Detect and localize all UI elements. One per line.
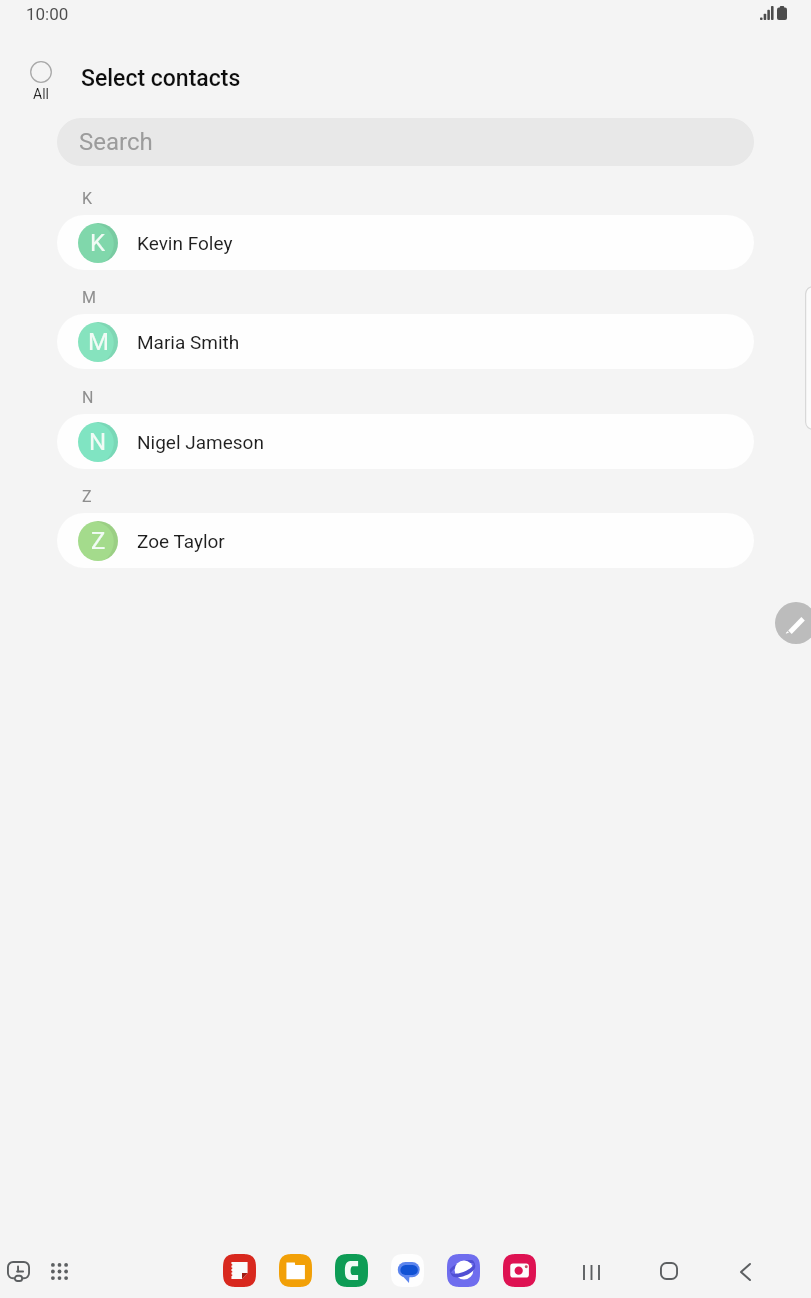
staticText: Zoe Taylor <box>137 530 225 552</box>
staticText: Nigel Jameson <box>137 431 264 453</box>
staticText: Z <box>82 487 92 506</box>
staticText: 10:00 <box>26 4 69 24</box>
button[interactable]: Apps <box>41 1253 77 1289</box>
button[interactable]: N <box>57 414 754 469</box>
button[interactable]: Home <box>651 1253 687 1289</box>
button[interactable]: My Files <box>279 1254 312 1287</box>
button[interactable]: Internet <box>447 1254 480 1287</box>
staticText: Kevin Foley <box>137 232 233 254</box>
staticText: Maria Smith <box>137 331 240 353</box>
button[interactable]: Phone <box>335 1254 368 1287</box>
staticText: N <box>89 428 107 456</box>
button[interactable]: Samsung Notes <box>223 1254 256 1287</box>
staticText: Search <box>79 128 153 156</box>
staticText: K <box>82 189 93 208</box>
staticText: N <box>82 388 94 407</box>
button[interactable]: Search <box>57 118 754 166</box>
button[interactable]: M <box>57 314 754 369</box>
staticText: K <box>90 229 106 257</box>
staticText: M <box>82 288 96 307</box>
button[interactable]: New contact <box>775 602 811 644</box>
button[interactable]: DeX <box>0 1253 36 1289</box>
staticText: Select contacts <box>81 65 241 92</box>
button[interactable]: Back <box>727 1254 763 1290</box>
button[interactable]: Select all <box>24 61 58 102</box>
button[interactable]: Recent apps <box>573 1254 609 1290</box>
staticText: Z <box>91 527 106 555</box>
button[interactable]: Z <box>57 513 754 568</box>
staticText: All <box>33 86 49 102</box>
button[interactable]: Messages <box>391 1254 424 1287</box>
staticText: M <box>88 328 109 356</box>
button[interactable]: Camera <box>503 1254 536 1287</box>
button[interactable]: K <box>57 215 754 270</box>
